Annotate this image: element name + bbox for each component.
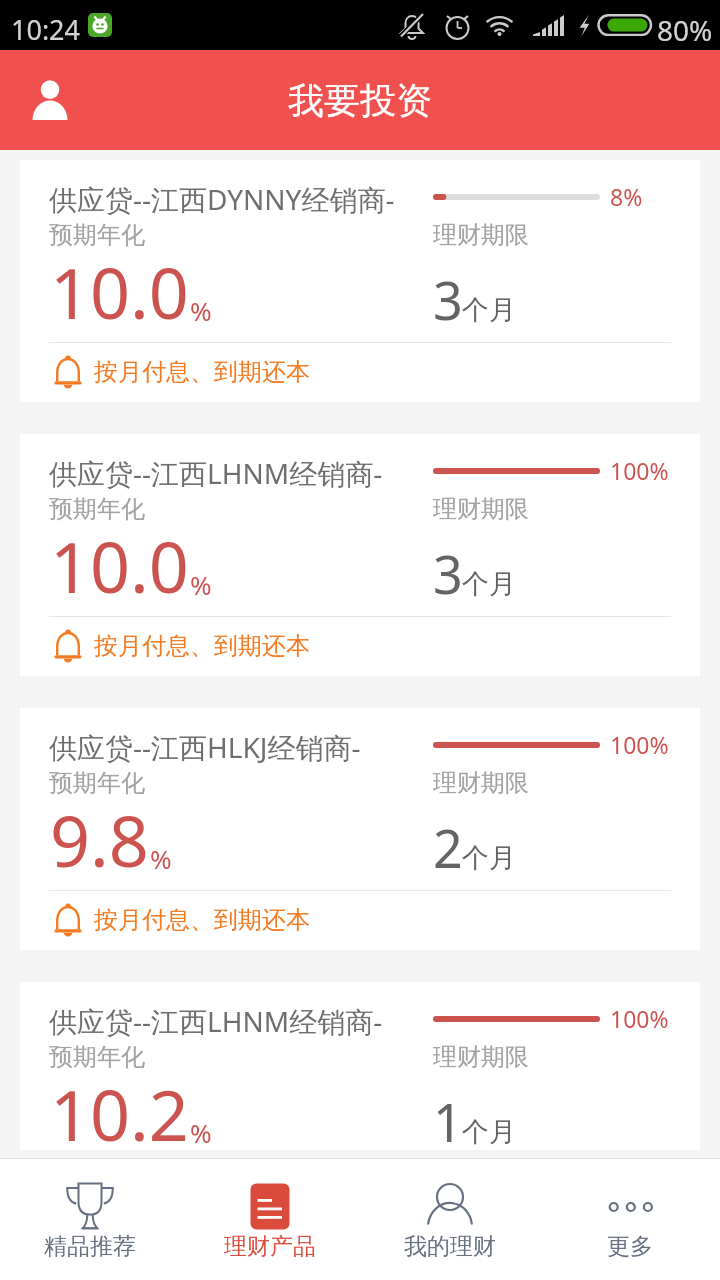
staticText: 3 [433, 264, 463, 335]
staticText: % [190, 293, 212, 328]
staticText: 精品推荐 [44, 1232, 136, 1261]
staticText: 8% [610, 181, 643, 212]
staticText: 供应贷--江西HLKJ经销商- [49, 728, 361, 766]
staticText: 2 [433, 812, 463, 883]
staticText: % [190, 567, 212, 602]
staticText: 预期年化 [49, 768, 145, 798]
button[interactable]: 精品推荐 [0, 1159, 180, 1280]
staticText: 按月付息、到期还本 [94, 905, 310, 935]
button[interactable]: 供应贷--江西HLKJ经销商- [20, 708, 700, 950]
staticText: 预期年化 [49, 494, 145, 524]
staticText: 更多 [607, 1232, 653, 1261]
staticText: % [150, 841, 172, 876]
staticText: 1 [433, 1086, 463, 1150]
button[interactable]: 更多 [540, 1159, 720, 1280]
button[interactable]: 我的理财 [360, 1159, 540, 1280]
staticText: 我要投资 [288, 78, 432, 123]
staticText: 个月 [462, 841, 516, 875]
staticText: 理财期限 [433, 494, 529, 524]
staticText: 80% [657, 11, 713, 49]
staticText: 预期年化 [49, 220, 145, 250]
staticText: 100% [610, 1003, 669, 1034]
button[interactable]: 理财产品 [180, 1159, 360, 1280]
button[interactable]: 供应贷--江西DYNNY经销商- [20, 160, 700, 402]
staticText: 10.0 [50, 518, 189, 613]
staticText: 理财期限 [433, 768, 529, 798]
staticText: 3 [433, 538, 463, 609]
staticText: 预期年化 [49, 1042, 145, 1072]
staticText: 供应贷--江西LHNM经销商- [49, 454, 383, 492]
staticText: 个月 [462, 567, 516, 601]
staticText: 个月 [462, 293, 516, 327]
staticText: % [190, 1115, 212, 1150]
staticText: 10.2 [50, 1066, 189, 1150]
staticText: 供应贷--江西DYNNY经销商- [49, 180, 395, 218]
staticText: 理财产品 [224, 1232, 316, 1261]
staticText: 个月 [462, 1115, 516, 1149]
staticText: 按月付息、到期还本 [94, 631, 310, 661]
staticText: 10.0 [50, 244, 189, 339]
staticText: 理财期限 [433, 1042, 529, 1072]
button[interactable]: 供应贷--江西LHNM经销商- [20, 982, 700, 1150]
button[interactable]: 供应贷--江西LHNM经销商- [20, 434, 700, 676]
staticText: 9.8 [50, 792, 149, 887]
staticText: 理财期限 [433, 220, 529, 250]
staticText: 10:24 [11, 11, 81, 48]
staticText: 100% [610, 455, 669, 486]
staticText: 按月付息、到期还本 [94, 357, 310, 387]
staticText: 我的理财 [404, 1232, 496, 1261]
staticText: 100% [610, 729, 669, 760]
staticText: 供应贷--江西LHNM经销商- [49, 1002, 383, 1040]
button[interactable]: Profile [14, 64, 86, 136]
